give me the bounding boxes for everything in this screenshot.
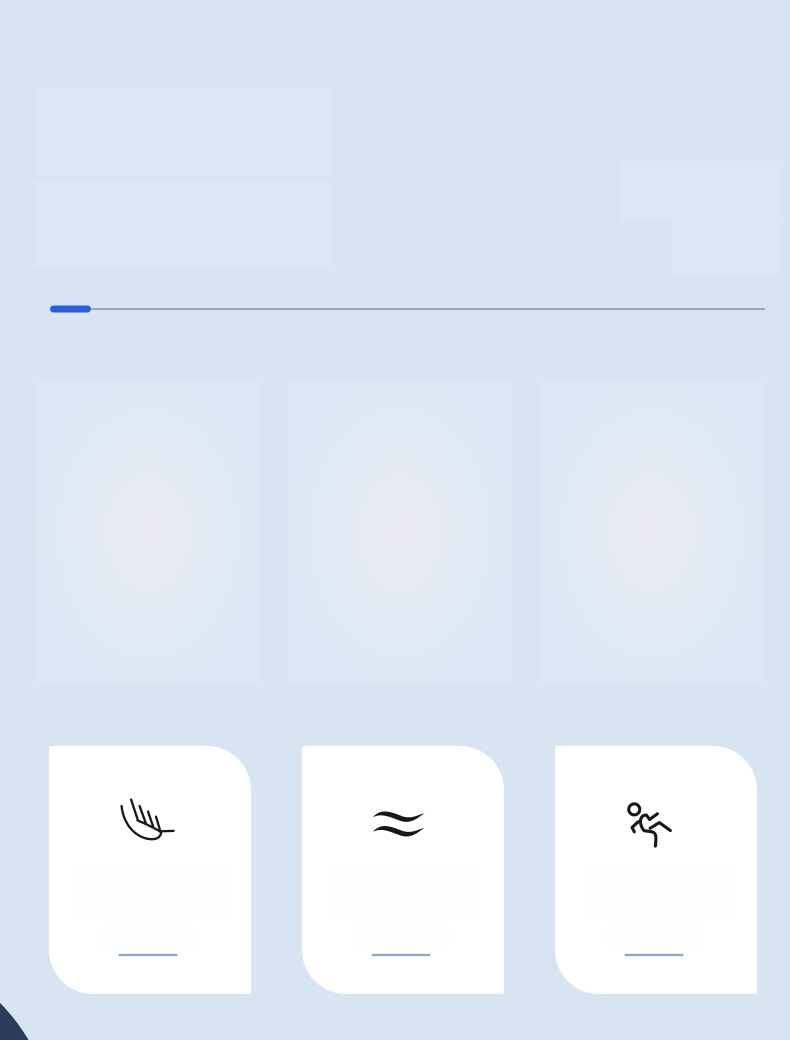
button[interactable]: Move — [555, 746, 757, 994]
button[interactable]: Meditate — [49, 746, 251, 994]
button[interactable]: Breathe — [302, 746, 504, 994]
